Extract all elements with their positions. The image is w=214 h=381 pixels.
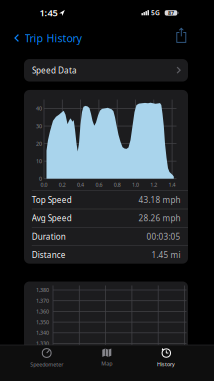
staticText: 1,380 <box>36 286 49 294</box>
button[interactable]: Speedometer <box>30 347 63 368</box>
staticText: 30 <box>36 123 42 130</box>
staticText: 1,340 <box>36 329 49 336</box>
staticText: History <box>157 361 175 368</box>
staticText: 0.0 <box>40 181 47 188</box>
staticText: 1:45 <box>39 6 57 19</box>
staticText: 0.2 <box>59 181 66 188</box>
staticText: 1.0 <box>132 181 139 188</box>
staticText: 10 <box>36 158 42 165</box>
staticText: 20 <box>36 140 42 147</box>
staticText: 87 <box>168 9 174 16</box>
button[interactable]: History <box>157 348 175 368</box>
staticText: 0.6 <box>95 181 102 188</box>
staticText: 1,370 <box>36 297 49 304</box>
staticText: 0.8 <box>114 181 121 188</box>
staticText: Trip History <box>24 31 81 45</box>
staticText: Map <box>101 360 112 367</box>
button[interactable]: Speed Data <box>24 59 188 81</box>
staticText: Speedometer <box>30 361 63 368</box>
staticText: 1,350 <box>36 319 49 326</box>
button[interactable] <box>176 27 186 43</box>
staticText: 1,330 <box>36 340 49 347</box>
staticText: 1,360 <box>36 308 49 315</box>
staticText: Top Speed <box>32 194 72 205</box>
button[interactable]: Trip History <box>14 30 84 45</box>
staticText: Speed Data <box>32 65 77 76</box>
staticText: 00:03:05 <box>146 231 180 242</box>
staticText: Duration <box>32 231 66 242</box>
staticText: 0 <box>39 175 42 182</box>
staticText: 1.2 <box>150 181 157 188</box>
button[interactable]: Map <box>101 348 112 367</box>
staticText: 1.45 mi <box>151 249 180 260</box>
staticText: 43.18 mph <box>138 194 180 205</box>
staticText: Avg Speed <box>32 213 72 224</box>
staticText: 0.4 <box>77 181 84 188</box>
staticText: 5G <box>151 8 160 17</box>
staticText: 40 <box>36 105 42 112</box>
staticText: Distance <box>32 249 66 260</box>
staticText: 1.4 <box>169 181 176 188</box>
staticText: 28.26 mph <box>138 213 180 224</box>
